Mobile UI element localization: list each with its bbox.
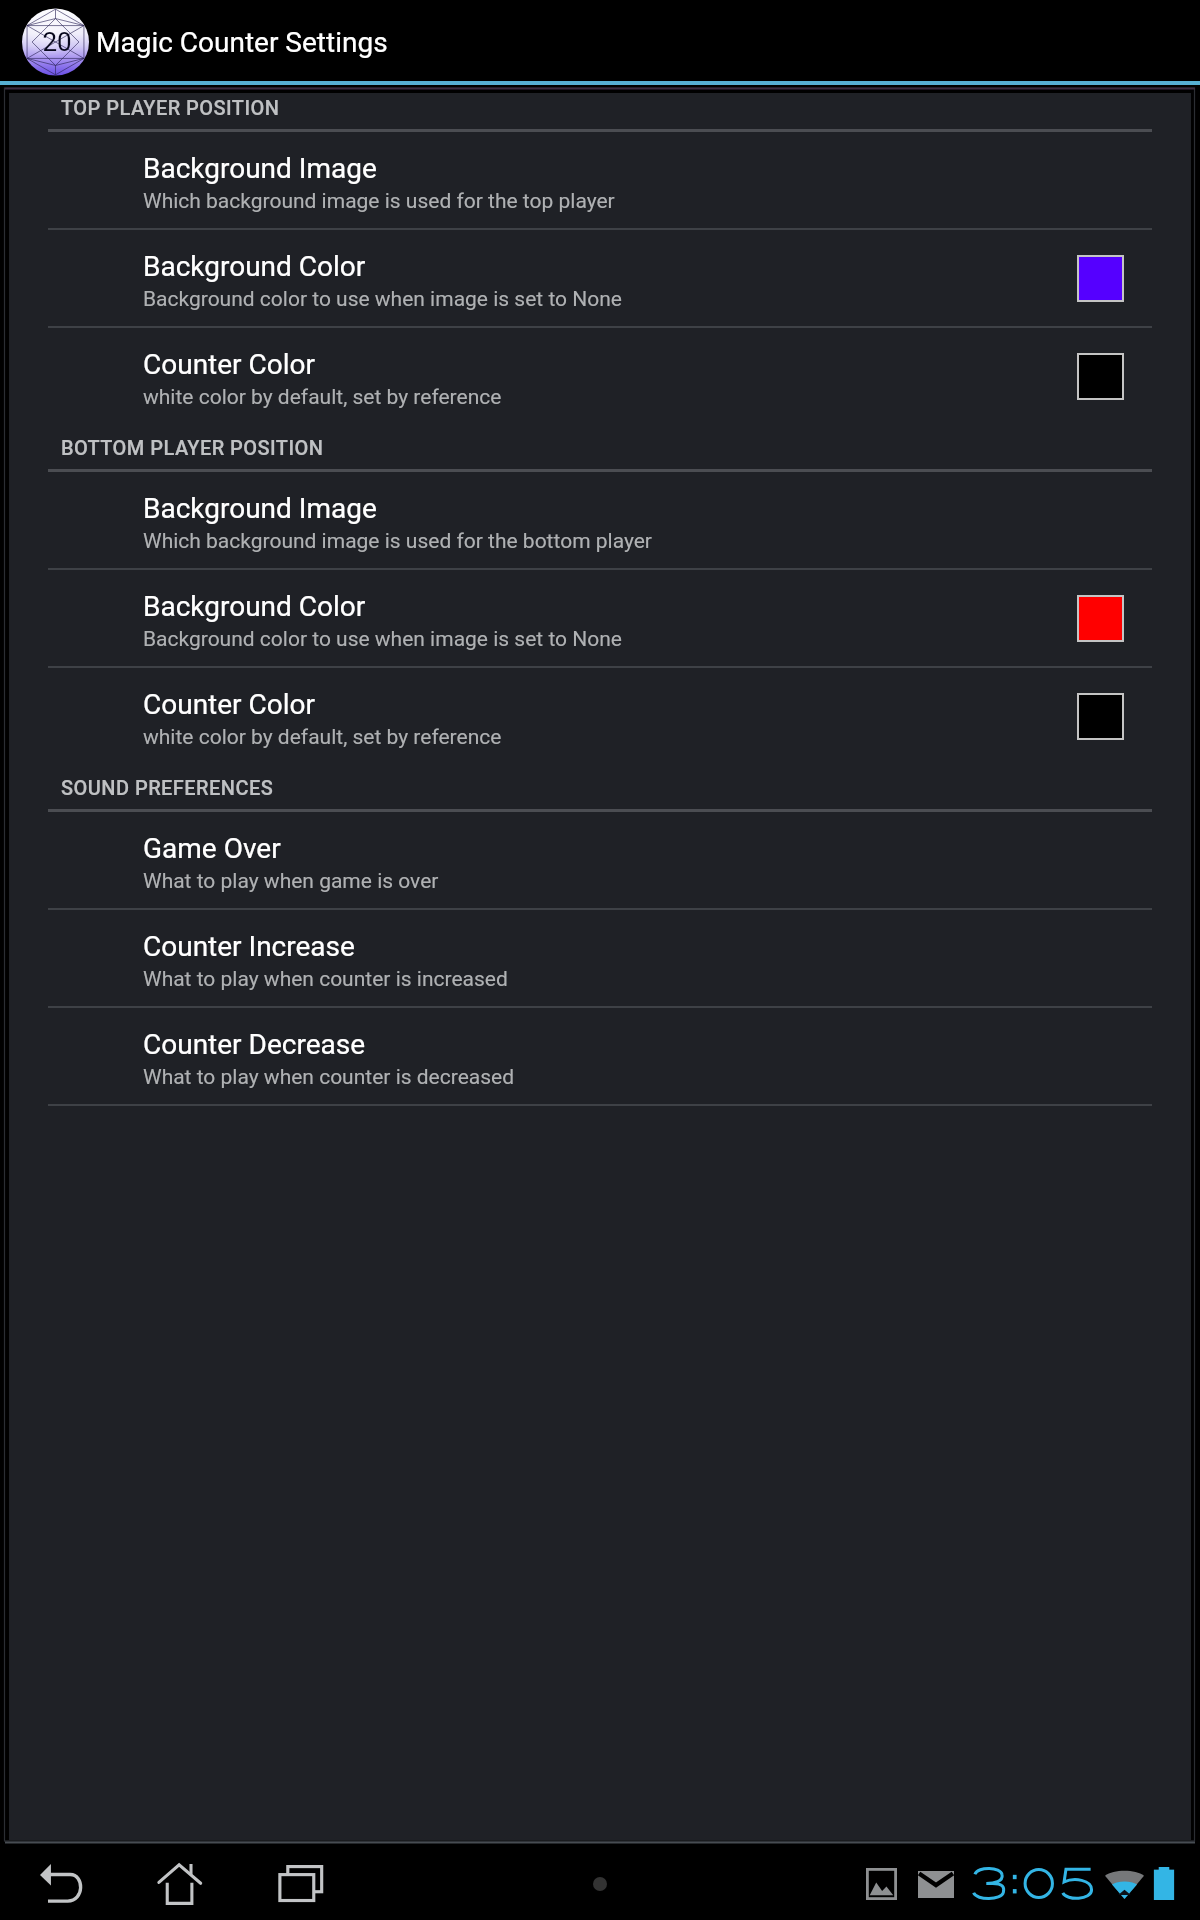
button[interactable]: Background Color [9,230,1191,326]
button[interactable]: Counter Color [9,668,1191,764]
button[interactable]: Counter Increase [9,910,1191,1006]
staticText: Which background image is used for the b… [143,529,652,554]
staticText: Background color to use when image is se… [143,287,622,312]
staticText: Game Over [143,832,281,865]
staticText: white color by default, set by reference [143,725,502,750]
button[interactable]: Background Color [9,570,1191,666]
button[interactable]: Game Over [9,812,1191,908]
button[interactable]: Magic Counter, up [0,0,1200,81]
staticText: Which background image is used for the t… [143,189,615,214]
staticText: Background Color [143,590,366,623]
button[interactable]: Home [148,1856,210,1912]
staticText: Counter Color [143,348,315,381]
staticText: Background color to use when image is se… [143,627,622,652]
staticText: Background Color [143,250,366,283]
staticText: white color by default, set by reference [143,385,502,410]
staticText: Counter Increase [143,930,355,963]
staticText: What to play when counter is decreased [143,1065,515,1090]
staticText: 20 [42,27,72,57]
button[interactable]: Counter Decrease [9,1008,1191,1104]
button[interactable]: Back [30,1856,92,1912]
staticText: What to play when game is over [143,869,439,894]
staticText: What to play when counter is increased [143,967,508,992]
other: Magic Counter, up [22,8,89,76]
staticText: BOTTOM PLAYER POSITION [61,436,324,459]
staticText: SOUND PREFERENCES [61,776,274,799]
staticText: Background Image [143,492,377,525]
staticText: Counter Decrease [143,1028,366,1061]
button[interactable]: Counter Color [9,328,1191,424]
button[interactable]: Recent apps [269,1856,331,1912]
button[interactable]: Background Image [9,472,1191,568]
button[interactable]: Background Image [9,132,1191,228]
staticText: Background Image [143,152,377,185]
staticText: Counter Color [143,688,315,721]
staticText: TOP PLAYER POSITION [61,96,280,119]
staticText: Magic Counter Settings [96,26,388,59]
